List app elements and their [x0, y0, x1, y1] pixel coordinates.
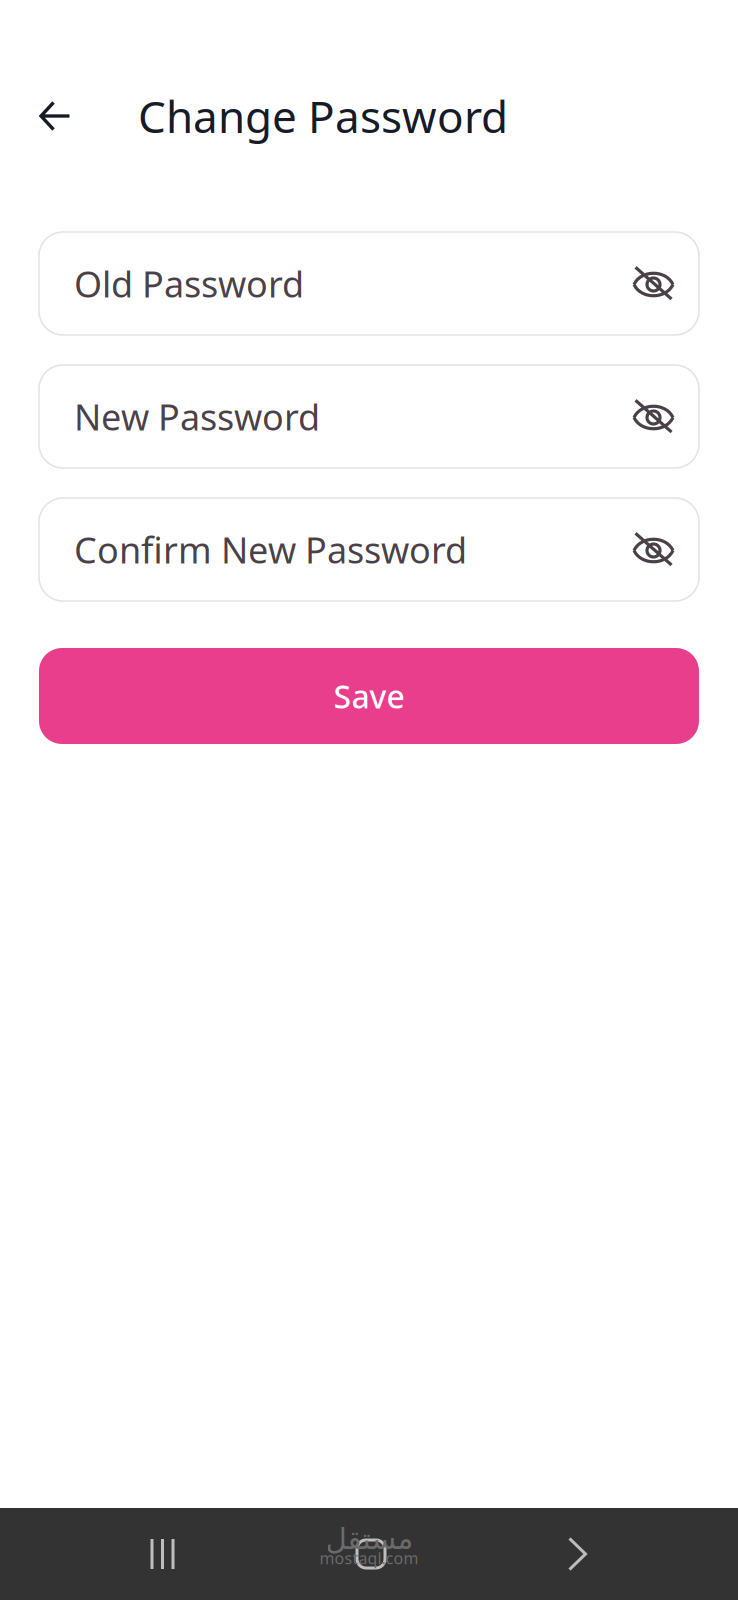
staticText: mostaql.com [319, 1547, 418, 1569]
button[interactable]: New Password [39, 365, 620, 468]
staticText: مستقل [325, 1522, 413, 1555]
staticText: New Password [74, 393, 320, 440]
button[interactable]: Save [39, 648, 699, 744]
button[interactable]: Show Old Password [620, 250, 687, 317]
button[interactable]: Home [325, 1508, 417, 1600]
staticText: Change Password [138, 87, 508, 145]
staticText: Confirm New Password [74, 526, 467, 573]
staticText: Save [333, 675, 404, 717]
button[interactable]: Show New Password [620, 383, 687, 450]
button[interactable]: Back [16, 77, 94, 155]
button[interactable]: Back [537, 1507, 617, 1600]
staticText: Old Password [74, 260, 304, 307]
button[interactable]: Recent apps [120, 1508, 204, 1600]
button[interactable]: Show Confirm New Password [620, 516, 687, 583]
button[interactable]: Confirm New Password [39, 498, 620, 601]
button[interactable]: Old Password [39, 232, 620, 335]
